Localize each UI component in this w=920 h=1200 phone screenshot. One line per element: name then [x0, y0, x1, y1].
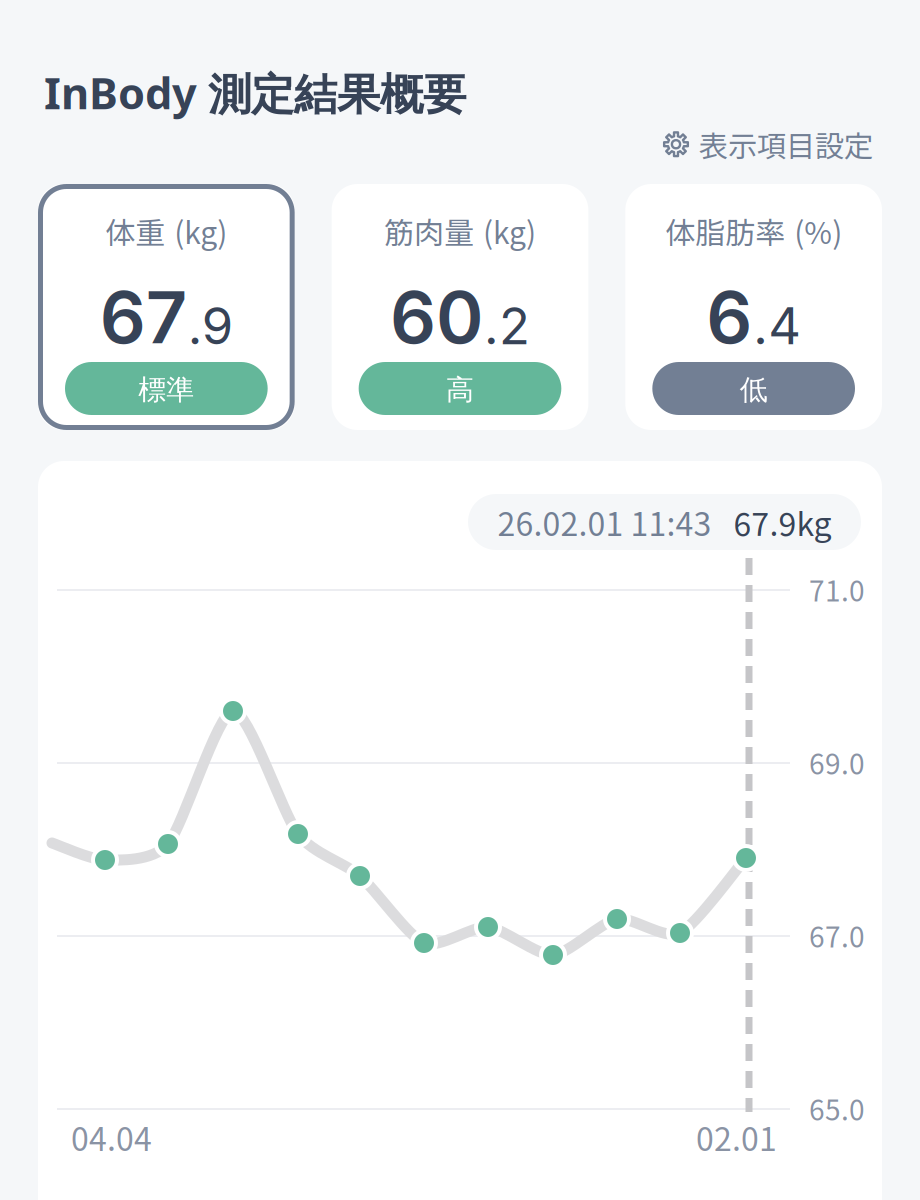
button[interactable]: 筋肉量: [332, 184, 588, 430]
staticText: 体重: [105, 209, 165, 253]
staticText: (kg): [483, 209, 536, 253]
staticText: (kg): [174, 209, 227, 253]
staticText: 71.0: [809, 569, 865, 609]
staticText: (%): [794, 209, 842, 253]
staticText: 高: [446, 372, 474, 408]
button[interactable]: 表示項目設定: [664, 117, 873, 171]
staticText: .4: [753, 295, 801, 357]
button[interactable]: 体重: [38, 184, 295, 430]
staticText: 26.02.01 11:43: [497, 499, 711, 545]
staticText: 67.0: [809, 915, 865, 955]
staticText: 体脂肪率: [665, 209, 785, 253]
button[interactable]: 体脂肪率: [625, 184, 882, 430]
staticText: 筋肉量: [384, 209, 474, 253]
staticText: InBody 測定結果概要: [44, 63, 466, 122]
staticText: 67.9kg: [733, 499, 831, 545]
staticText: .2: [484, 295, 530, 357]
staticText: 02.01: [696, 1114, 777, 1160]
staticText: 低: [740, 372, 768, 408]
staticText: 69.0: [809, 742, 865, 782]
staticText: 65.0: [809, 1088, 865, 1128]
staticText: 標準: [138, 372, 194, 408]
staticText: 67: [100, 273, 187, 360]
staticText: 6: [706, 273, 752, 360]
staticText: 60: [390, 273, 483, 360]
staticText: .9: [188, 295, 233, 357]
staticText: 04.04: [71, 1114, 152, 1160]
staticText: 表示項目設定: [699, 123, 873, 165]
